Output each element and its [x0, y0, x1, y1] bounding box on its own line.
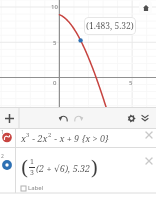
staticText: ), 5.32 [65, 162, 91, 174]
staticText: 2 [1, 153, 4, 160]
button[interactable]: Delete expression 1 [143, 129, 154, 140]
button[interactable]: Label [21, 184, 44, 192]
button[interactable]: Redo [71, 110, 87, 126]
button[interactable]: Delete expression 2 [143, 155, 154, 166]
button[interactable]: Undo [55, 110, 71, 126]
staticText: − x + 9 {x > 0} [52, 132, 109, 144]
staticText: 1 [1, 129, 4, 136]
staticText: Label [28, 184, 44, 192]
staticText: 3 [26, 131, 30, 139]
staticText: 2 [48, 131, 52, 139]
staticText: x [21, 132, 26, 144]
button[interactable]: (1.483, 5.32) [84, 17, 136, 35]
staticText: 3 [30, 168, 34, 178]
staticText: (1.483, 5.32) [86, 20, 134, 32]
staticText: (2 + [36, 162, 54, 174]
staticText: ) [91, 154, 98, 181]
button[interactable]: Add expression [1, 110, 18, 127]
button[interactable]: Home [139, 1, 152, 14]
staticText: 5 [53, 39, 57, 47]
staticText: 1 [30, 157, 34, 167]
button[interactable]: Settings [123, 110, 139, 126]
button[interactable]: Collapse keypad [137, 110, 153, 126]
staticText: 10 [51, 3, 58, 11]
staticText: − 2x [30, 132, 48, 144]
staticText: 0 [53, 79, 57, 87]
staticText: 5 [129, 79, 133, 87]
staticText: ( [21, 154, 28, 181]
staticText: √6 [54, 162, 65, 174]
